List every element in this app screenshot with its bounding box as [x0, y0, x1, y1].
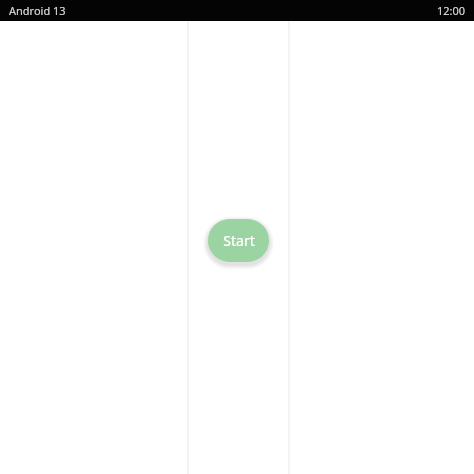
staticText: 12:00	[436, 3, 465, 18]
button[interactable]: Start	[208, 219, 269, 262]
staticText: Android 13	[9, 3, 66, 18]
staticText: Start	[223, 231, 255, 250]
